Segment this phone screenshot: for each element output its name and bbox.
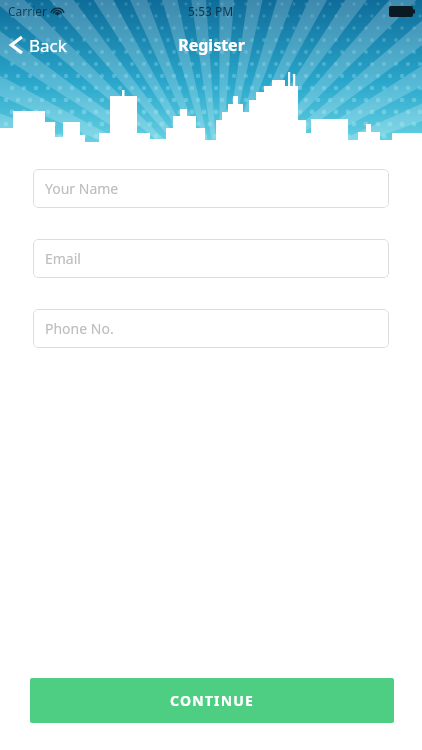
staticText: Back bbox=[29, 34, 67, 57]
staticText: Carrier bbox=[8, 3, 48, 19]
staticText: CONTINUE bbox=[170, 691, 255, 710]
button[interactable]: Back bbox=[0, 30, 77, 60]
staticText: Email bbox=[45, 249, 81, 268]
staticText: Your Name bbox=[45, 179, 119, 198]
button[interactable]: Your Name bbox=[33, 169, 389, 208]
staticText: Phone No. bbox=[45, 319, 114, 338]
staticText: Register bbox=[178, 34, 245, 56]
button[interactable]: Email bbox=[33, 239, 389, 278]
button[interactable]: Phone No. bbox=[33, 309, 389, 348]
staticText: 5:53 PM bbox=[188, 3, 234, 19]
button[interactable]: CONTINUE bbox=[30, 678, 394, 723]
